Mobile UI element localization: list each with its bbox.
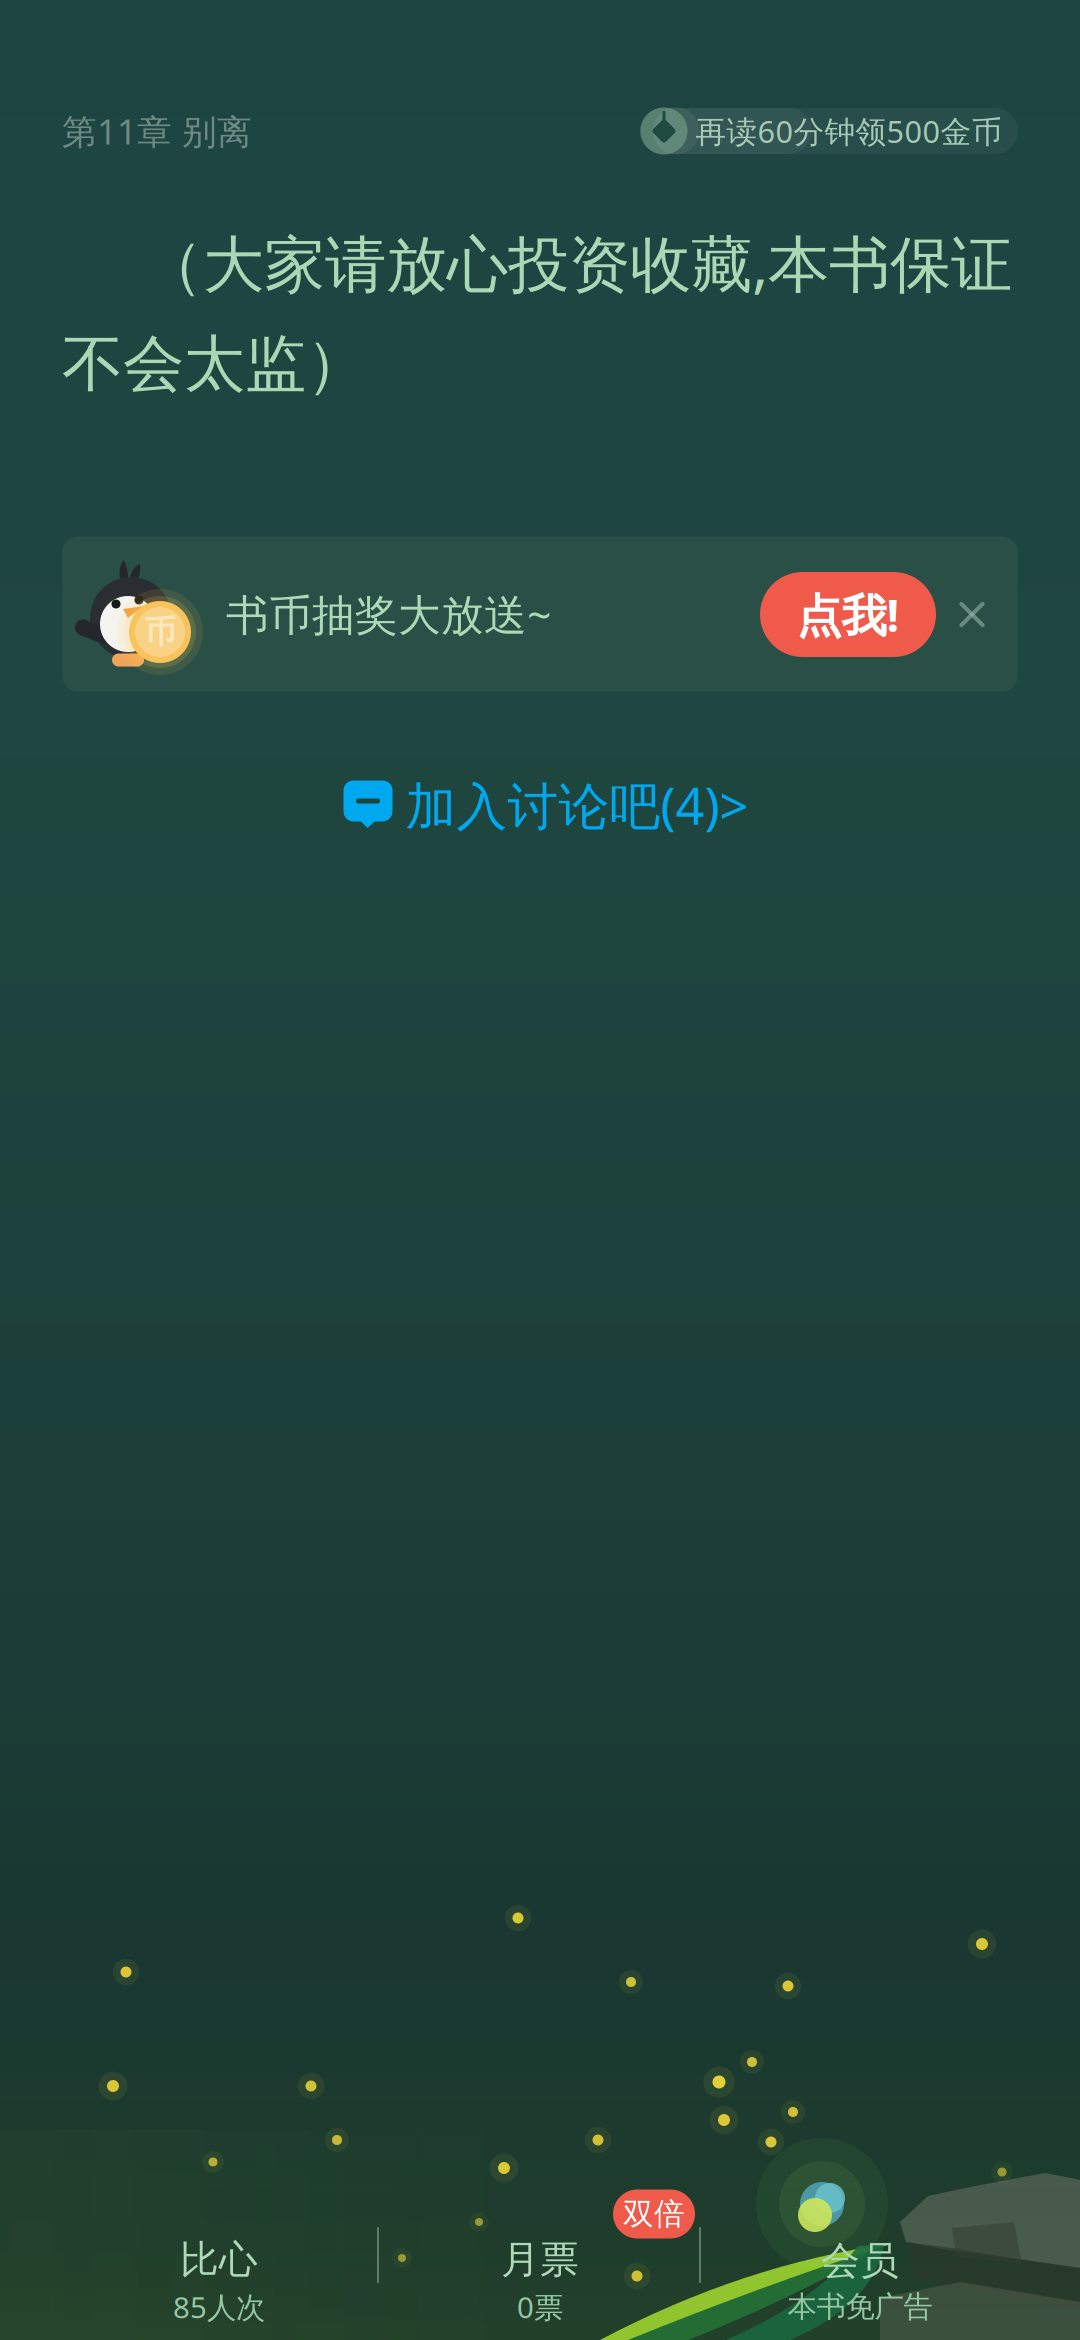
staticText: 比心 bbox=[180, 2236, 258, 2283]
staticText: 再读60分钟领500金币 bbox=[695, 111, 1002, 151]
staticText: 85人次 bbox=[173, 2287, 265, 2326]
button[interactable]: 月票 bbox=[390, 2196, 690, 2340]
staticText: 双倍 bbox=[623, 2195, 685, 2233]
button[interactable]: 加入讨论吧(4)> bbox=[343, 744, 739, 864]
staticText: 币 bbox=[144, 612, 176, 652]
staticText: 会员 bbox=[821, 2237, 899, 2285]
staticText: 本书免广告 bbox=[787, 2289, 932, 2325]
button[interactable]: 再读60分钟领500金币 bbox=[640, 108, 1018, 154]
staticText: 不会太监） bbox=[62, 327, 367, 402]
staticText: （大家请放心投资收藏,本书保证 bbox=[142, 222, 1012, 303]
button[interactable]: 比心 bbox=[69, 2196, 369, 2340]
staticText: 书币抽奖大放送~ bbox=[226, 586, 551, 642]
staticText: 第11章 别离 bbox=[62, 108, 252, 154]
staticText: 点我! bbox=[796, 584, 899, 645]
staticText: 月票 bbox=[501, 2236, 579, 2283]
button[interactable]: 币 bbox=[62, 536, 1018, 691]
staticText: 0票 bbox=[517, 2287, 563, 2326]
button[interactable]: 点我! bbox=[760, 572, 936, 657]
button[interactable]: 会员 bbox=[710, 2196, 1010, 2340]
staticText: 加入讨论吧(4)> bbox=[405, 771, 748, 839]
button[interactable]: 关闭 bbox=[948, 590, 996, 638]
